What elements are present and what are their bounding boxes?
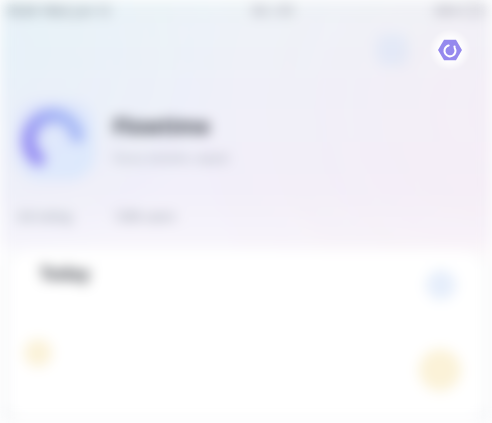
staticText: Flowtime	[113, 112, 210, 141]
button[interactable]: Refresh	[429, 29, 471, 71]
staticText: 10:24	[6, 2, 37, 18]
staticText: 86%	[435, 2, 459, 18]
staticText: Wed, Jun 12	[43, 2, 111, 18]
staticText: 120k users	[114, 208, 176, 224]
staticText: 5G LTE	[252, 2, 294, 18]
button[interactable]: Filter	[426, 270, 456, 300]
staticText: Today	[40, 262, 90, 285]
